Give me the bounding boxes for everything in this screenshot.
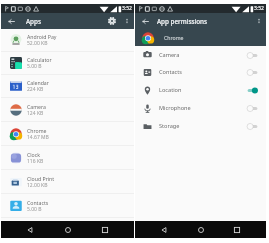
staticText: 224 KB <box>27 86 44 93</box>
button[interactable]: Cloud Print <box>1 170 134 194</box>
button[interactable]: Home <box>193 222 209 238</box>
button[interactable]: Chrome <box>1 122 134 146</box>
staticText: Calculator <box>27 56 52 63</box>
button[interactable]: Back <box>1 13 22 29</box>
button[interactable]: Chrome <box>135 29 266 46</box>
staticText: Apps <box>26 17 41 26</box>
button[interactable]: Back <box>156 222 172 238</box>
button[interactable]: Back <box>22 222 38 238</box>
button[interactable]: Calendar <box>1 75 134 98</box>
staticText: Microphone <box>159 104 191 112</box>
staticText: Contacts <box>27 199 49 206</box>
staticText: Calendar <box>27 79 49 86</box>
staticText: 116 KB <box>27 158 44 165</box>
staticText: Storage <box>159 122 180 130</box>
button[interactable]: Contacts <box>1 194 134 218</box>
staticText: Cloud Print <box>27 175 55 182</box>
button[interactable]: Location <box>135 81 266 99</box>
staticText: 14.67 MB <box>27 134 49 141</box>
button[interactable]: Camera <box>135 46 266 63</box>
button[interactable]: Toggle permission <box>246 121 258 131</box>
staticText: App permissions <box>157 17 208 26</box>
staticText: 3:52 <box>122 5 132 12</box>
staticText: 3:52 <box>254 5 264 12</box>
button[interactable]: Toggle permission <box>246 50 258 60</box>
button[interactable]: Toggle permission <box>246 67 258 77</box>
button[interactable]: Microphone <box>135 99 266 117</box>
staticText: 12.00 KB <box>27 182 48 189</box>
button[interactable]: More options <box>252 13 266 29</box>
staticText: 124 KB <box>27 110 44 117</box>
staticText: Location <box>159 86 182 94</box>
button[interactable]: Clock <box>1 146 134 170</box>
button[interactable]: Toggle permission <box>246 85 258 95</box>
button[interactable]: Toggle permission <box>246 103 258 113</box>
button[interactable]: Settings <box>104 13 120 29</box>
staticText: 5.00 B <box>27 63 42 70</box>
staticText: Chrome <box>164 34 184 41</box>
button[interactable]: Back <box>135 13 156 29</box>
button[interactable]: Storage <box>135 117 266 135</box>
button[interactable]: Camera <box>1 98 134 122</box>
staticText: Camera <box>159 51 180 59</box>
button[interactable]: Recents <box>97 222 113 238</box>
staticText: Camera <box>27 103 46 110</box>
button[interactable]: Calculator <box>1 52 134 75</box>
button[interactable]: Android Pay <box>1 29 134 52</box>
staticText: 52.00 KB <box>27 40 48 47</box>
staticText: Clock <box>27 151 41 158</box>
staticText: Android Pay <box>27 33 57 40</box>
button[interactable]: More options <box>120 13 134 29</box>
staticText: Chrome <box>27 127 47 134</box>
staticText: 5.00 B <box>27 206 42 213</box>
staticText: Contacts <box>159 68 182 76</box>
button[interactable]: Contacts <box>135 63 266 81</box>
button[interactable]: Recents <box>229 222 245 238</box>
button[interactable]: Home <box>60 222 76 238</box>
